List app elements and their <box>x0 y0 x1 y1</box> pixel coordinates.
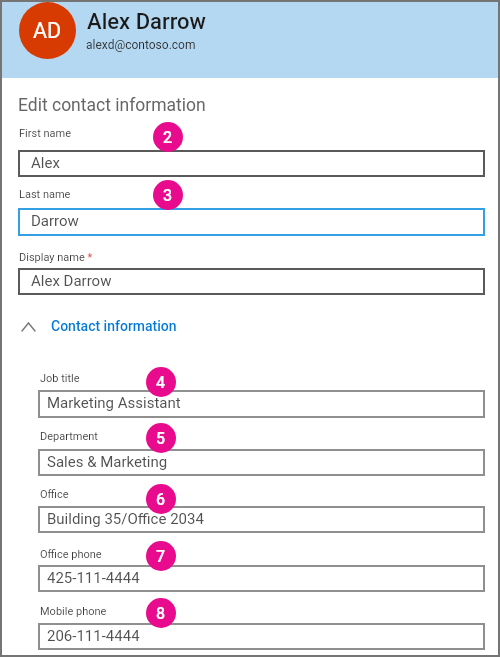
button[interactable]: Sales & Marketing <box>38 449 485 476</box>
staticText: Last name <box>19 188 71 201</box>
staticText: Display name * <box>19 251 93 264</box>
staticText: Alex Darrow <box>31 272 112 290</box>
staticText: Office <box>40 488 69 501</box>
staticText: Job title <box>40 372 80 385</box>
staticText: 2 <box>163 128 173 147</box>
staticText: AD <box>33 18 62 43</box>
button[interactable]: Marketing Assistant <box>38 390 485 418</box>
staticText: Alex <box>31 154 60 172</box>
staticText: Marketing Assistant <box>47 394 181 412</box>
button[interactable]: 206-111-4444 <box>38 623 485 650</box>
staticText: Darrow <box>31 212 79 230</box>
staticText: 5 <box>156 429 166 448</box>
staticText: 3 <box>163 186 173 205</box>
staticText: 4 <box>156 373 166 392</box>
staticText: Building 35/Office 2034 <box>47 510 204 528</box>
staticText: Department <box>40 430 98 443</box>
button[interactable]: Alex <box>18 150 485 177</box>
staticText: Mobile phone <box>40 605 107 618</box>
staticText: alexd@contoso.com <box>86 38 196 52</box>
staticText: Office phone <box>40 548 102 561</box>
button[interactable]: Building 35/Office 2034 <box>38 506 485 533</box>
button[interactable]: 425-111-4444 <box>38 565 485 592</box>
staticText: Alex Darrow <box>87 9 206 35</box>
button[interactable]: Contact information <box>51 318 177 334</box>
staticText: 6 <box>156 490 166 509</box>
staticText: Sales & Marketing <box>47 453 168 471</box>
staticText: 8 <box>156 604 166 623</box>
staticText: 7 <box>156 547 166 566</box>
button[interactable]: AD <box>19 2 76 59</box>
staticText: Edit contact information <box>18 95 206 116</box>
button[interactable]: Alex Darrow <box>18 268 485 295</box>
staticText: 425-111-4444 <box>47 569 140 587</box>
button[interactable]: Darrow <box>18 208 485 236</box>
staticText: 206-111-4444 <box>47 627 140 645</box>
staticText: First name <box>19 127 72 140</box>
